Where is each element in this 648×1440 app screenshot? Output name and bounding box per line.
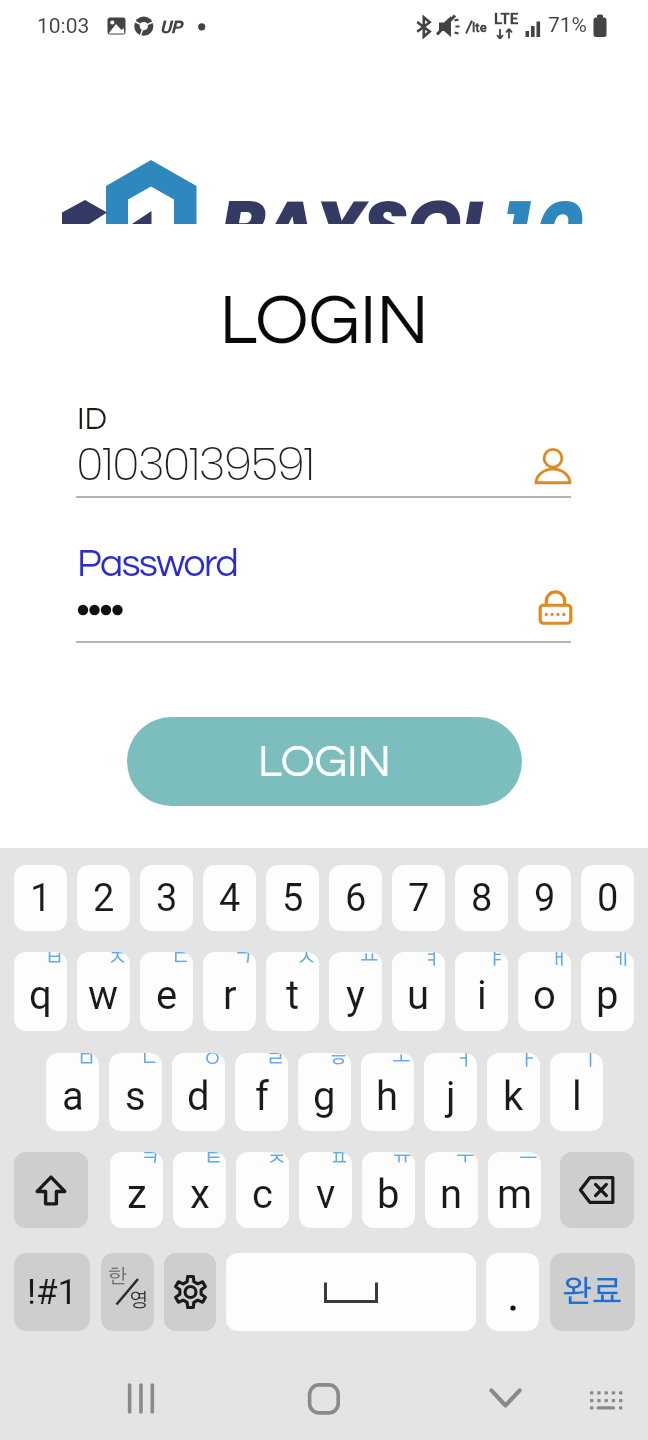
staticText: PAYSOL bbox=[220, 177, 495, 224]
staticText: 한 bbox=[108, 1267, 128, 1287]
staticText: !#1 bbox=[27, 1272, 78, 1313]
button[interactable]: 완료 bbox=[550, 1253, 635, 1331]
button[interactable]: ㅑ bbox=[455, 952, 508, 1031]
button[interactable]: ㅓ bbox=[424, 1053, 477, 1131]
button[interactable]: ㅅ bbox=[266, 952, 319, 1031]
staticText: 7 bbox=[408, 876, 430, 921]
staticText: 9 bbox=[534, 876, 556, 921]
button[interactable]: ㅕ bbox=[392, 952, 445, 1031]
button[interactable]: ㅣ bbox=[550, 1053, 603, 1131]
staticText: ㄹ bbox=[266, 1053, 285, 1069]
staticText: ㅊ bbox=[267, 1152, 286, 1168]
button[interactable]: Home bbox=[288, 1363, 360, 1433]
button[interactable]: Settings bbox=[164, 1253, 216, 1331]
button[interactable]: ㅠ bbox=[362, 1152, 415, 1228]
staticText: s bbox=[125, 1073, 146, 1120]
staticText: ㅕ bbox=[423, 952, 442, 968]
button[interactable]: Shift bbox=[14, 1152, 88, 1228]
staticText: ㅓ bbox=[455, 1053, 474, 1069]
button[interactable]: ㅗ bbox=[361, 1053, 414, 1131]
button[interactable]: 1 bbox=[14, 865, 67, 931]
staticText: UP bbox=[160, 17, 182, 37]
staticText: Password bbox=[77, 544, 238, 584]
staticText: 0 bbox=[536, 177, 584, 224]
button[interactable]: Backspace bbox=[560, 1152, 634, 1228]
button[interactable]: !#1 bbox=[14, 1253, 90, 1331]
staticText: ㅂ bbox=[45, 952, 64, 968]
button[interactable]: ㄱ bbox=[203, 952, 256, 1031]
staticText: ㅅ bbox=[297, 952, 316, 968]
button[interactable]: User bbox=[534, 448, 572, 486]
staticText: ㄴ bbox=[140, 1053, 159, 1069]
staticText: a bbox=[62, 1073, 84, 1120]
staticText: e bbox=[156, 972, 178, 1019]
staticText: t bbox=[286, 972, 300, 1019]
staticText: l bbox=[572, 1073, 582, 1120]
button[interactable]: ㄷ bbox=[140, 952, 193, 1031]
button[interactable]: ㅂ bbox=[14, 952, 67, 1031]
staticText: ㅜ bbox=[456, 1152, 475, 1168]
button[interactable]: ㅔ bbox=[581, 952, 634, 1031]
staticText: ㅌ bbox=[204, 1152, 223, 1168]
button[interactable]: ㄹ bbox=[235, 1053, 288, 1131]
staticText: ㅁ bbox=[77, 1053, 96, 1069]
button[interactable]: 2 bbox=[77, 865, 130, 931]
staticText: b bbox=[377, 1171, 400, 1218]
button[interactable]: ㅡ bbox=[488, 1152, 541, 1228]
staticText: r bbox=[223, 972, 237, 1019]
staticText: ㅏ bbox=[518, 1053, 537, 1069]
staticText: q bbox=[29, 972, 52, 1019]
staticText: y bbox=[346, 972, 365, 1019]
button[interactable]: Hide keyboard bbox=[470, 1363, 542, 1433]
button[interactable]: ㅎ bbox=[298, 1053, 351, 1131]
button[interactable]: 3 bbox=[140, 865, 193, 931]
button[interactable]: Period bbox=[486, 1253, 539, 1331]
button[interactable]: Switch keyboard bbox=[570, 1363, 632, 1433]
staticText: 10:03 bbox=[37, 14, 90, 39]
button[interactable]: 0 bbox=[581, 865, 634, 931]
staticText: ㄱ bbox=[234, 952, 253, 968]
staticText: ㅑ bbox=[486, 952, 505, 968]
staticText: 3 bbox=[156, 876, 178, 921]
button[interactable]: ㅌ bbox=[173, 1152, 226, 1228]
button[interactable]: ㅍ bbox=[299, 1152, 352, 1228]
button[interactable]: LOGIN bbox=[127, 717, 522, 806]
staticText: 1 bbox=[30, 876, 52, 921]
button[interactable]: 5 bbox=[266, 865, 319, 931]
button[interactable]: ㅜ bbox=[425, 1152, 478, 1228]
button[interactable]: ㅛ bbox=[329, 952, 382, 1031]
staticText: 71% bbox=[548, 13, 587, 38]
staticText: 01030139591 bbox=[76, 432, 314, 496]
staticText: ㅋ bbox=[141, 1152, 160, 1168]
staticText: u bbox=[407, 972, 430, 1019]
button[interactable]: ㅇ bbox=[172, 1053, 225, 1131]
button[interactable]: Space bbox=[226, 1253, 476, 1331]
staticText: 영 bbox=[129, 1291, 149, 1311]
button[interactable]: ㅁ bbox=[46, 1053, 99, 1131]
button[interactable]: ㅋ bbox=[110, 1152, 163, 1228]
staticText: z bbox=[127, 1171, 147, 1218]
button[interactable]: Korean English toggle bbox=[101, 1253, 154, 1331]
staticText: d bbox=[187, 1073, 210, 1120]
staticText: ㅈ bbox=[108, 952, 127, 968]
staticText: k bbox=[503, 1073, 524, 1120]
button[interactable]: 9 bbox=[518, 865, 571, 931]
button[interactable]: 8 bbox=[455, 865, 508, 931]
button[interactable]: Password bbox=[533, 585, 578, 630]
staticText: 완료 bbox=[562, 1277, 623, 1308]
button[interactable]: ㅏ bbox=[487, 1053, 540, 1131]
button[interactable]: 7 bbox=[392, 865, 445, 931]
staticText: ㅣ bbox=[581, 1053, 600, 1069]
button[interactable]: Recents bbox=[107, 1363, 179, 1433]
staticText: h bbox=[376, 1073, 399, 1120]
staticText: ID bbox=[77, 403, 108, 436]
staticText: ㅐ bbox=[549, 952, 568, 968]
staticText: v bbox=[316, 1171, 336, 1218]
button[interactable]: ㄴ bbox=[109, 1053, 162, 1131]
button[interactable]: ㅈ bbox=[77, 952, 130, 1031]
button[interactable]: ㅐ bbox=[518, 952, 571, 1031]
button[interactable]: 6 bbox=[329, 865, 382, 931]
button[interactable]: ㅊ bbox=[236, 1152, 289, 1228]
button[interactable]: 4 bbox=[203, 865, 256, 931]
staticText: i bbox=[477, 972, 487, 1019]
